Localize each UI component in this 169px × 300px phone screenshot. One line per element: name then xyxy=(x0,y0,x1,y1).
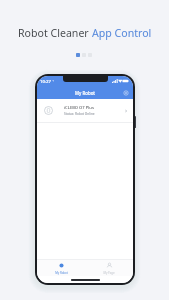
staticText: 10:27 xyxy=(40,78,51,84)
button[interactable] xyxy=(76,53,80,57)
button[interactable]: My Robot xyxy=(37,260,85,276)
button[interactable]: Add device xyxy=(122,89,130,97)
staticText: My Robot xyxy=(55,271,68,275)
staticText: Robot Cleaner xyxy=(18,26,92,40)
staticText: Status: Robot Online xyxy=(64,112,95,116)
button[interactable]: iCLEBO O7 Plus xyxy=(37,99,133,122)
staticText: App Control xyxy=(92,26,152,40)
button[interactable]: My Page xyxy=(85,260,133,276)
staticText: My Page xyxy=(103,271,115,275)
staticText: My Robot xyxy=(75,90,96,96)
staticText: iCLEBO O7 Plus xyxy=(64,105,94,111)
